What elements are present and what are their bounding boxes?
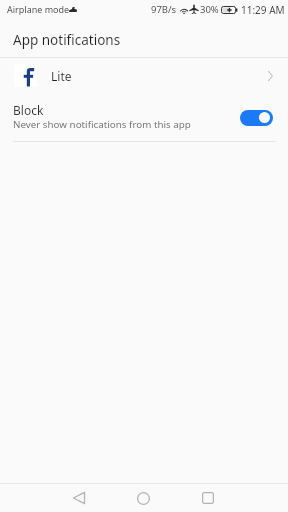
staticText: 97B/s <box>151 3 177 16</box>
button[interactable]: Lite <box>0 58 288 96</box>
staticText: 30% <box>200 3 219 16</box>
staticText: Airplane mode <box>7 3 70 15</box>
button[interactable]: Home <box>126 484 160 512</box>
button[interactable]: Block <box>0 96 288 141</box>
button[interactable]: Block notifications, on <box>240 110 273 126</box>
staticText: Never show notifications from this app <box>13 118 191 131</box>
button[interactable]: Back <box>62 484 96 512</box>
button[interactable]: Recent apps <box>191 484 225 512</box>
staticText: Block <box>13 102 44 118</box>
staticText: App notifications <box>13 31 121 49</box>
staticText: Lite <box>51 68 72 84</box>
staticText: 11:29 AM <box>241 3 285 17</box>
